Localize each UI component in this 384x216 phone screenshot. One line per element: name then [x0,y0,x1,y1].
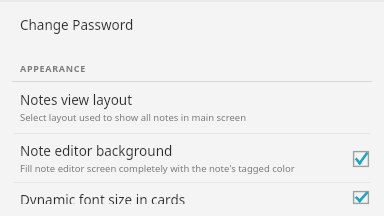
staticText: Notes view layout [20,91,133,109]
staticText: Select layout used to show all notes in … [20,111,246,124]
button[interactable]: Toggle setting [348,191,374,204]
staticText: Change Password [20,16,134,34]
staticText: Fill note editor screen completely with … [20,162,295,175]
staticText: APPEARANCE [20,62,86,74]
button[interactable]: Toggle setting [348,146,374,172]
button[interactable]: Change Password [0,14,384,44]
staticText: Note editor background [20,142,173,160]
button[interactable]: Note editor background [0,134,384,182]
button[interactable]: Notes view layout [0,82,384,133]
button[interactable]: Dynamic font size in cards [0,183,384,216]
staticText: Dynamic font size in cards [20,191,186,204]
